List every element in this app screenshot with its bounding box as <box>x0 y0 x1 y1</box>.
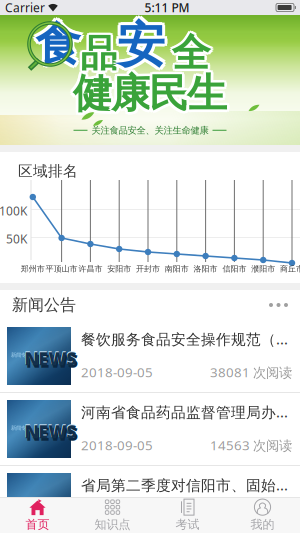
staticText: 民 <box>151 67 191 116</box>
staticText: 生 <box>185 71 225 120</box>
staticText: 全 <box>172 29 211 77</box>
staticText: 生 <box>185 67 225 116</box>
staticText: 民 <box>152 69 192 118</box>
staticText: 康 <box>111 66 151 116</box>
staticText: 安 <box>119 13 167 72</box>
staticText: 9821 次阅读 <box>218 509 292 527</box>
staticText: 生 <box>189 71 229 120</box>
staticText: 生 <box>184 69 224 118</box>
button[interactable]: 首页 <box>0 497 75 533</box>
button[interactable]: 新闻专栏 <box>0 320 300 393</box>
staticText: 康 <box>109 71 149 120</box>
staticText: NEWS <box>24 492 76 515</box>
staticText: 品 <box>80 28 117 74</box>
staticText: 健 <box>75 71 115 120</box>
staticText: 康 <box>113 71 153 120</box>
staticText: 商丘市 <box>280 264 300 274</box>
staticText: 品 <box>82 29 119 75</box>
staticText: 民 <box>149 72 189 121</box>
staticText: 健 <box>71 71 111 120</box>
staticText: 品 <box>80 31 117 77</box>
staticText: 区域排名 <box>18 162 78 180</box>
staticText: 南阳市 <box>165 264 189 274</box>
staticText: 食 <box>35 19 80 75</box>
staticText: NEWS <box>25 347 77 370</box>
staticText: 食 <box>38 14 83 70</box>
staticText: 民 <box>147 67 187 116</box>
staticText: 健 <box>75 67 115 116</box>
staticText: 开封市 <box>136 264 160 274</box>
staticText: 2018-09-05 <box>81 363 153 381</box>
staticText: 安 <box>120 16 168 75</box>
staticText: 民 <box>146 69 186 118</box>
staticText: 健 <box>71 67 111 116</box>
staticText: 民 <box>149 66 189 116</box>
staticText: 康 <box>113 67 153 116</box>
staticText: 全 <box>169 29 208 77</box>
staticText: 2018-09-05 <box>81 509 153 527</box>
staticText: 食 <box>38 18 83 74</box>
staticText: 郑州市 <box>21 264 45 274</box>
staticText: 品 <box>83 31 120 77</box>
staticText: 食 <box>35 16 80 72</box>
staticText: 健 <box>76 69 116 118</box>
button[interactable]: 我的 <box>225 497 300 533</box>
staticText: 食 <box>33 14 78 70</box>
staticText: 关注食品安全、关注生命健康 <box>91 124 208 136</box>
staticText: 品 <box>78 31 115 77</box>
button[interactable]: 新闻专栏 <box>0 466 300 533</box>
staticText: 食 <box>33 18 78 74</box>
staticText: 全 <box>174 31 213 79</box>
staticText: 新闻公告 <box>12 295 76 315</box>
staticText: 健 <box>70 69 110 118</box>
staticText: 全 <box>174 29 213 77</box>
staticText: 健 <box>73 69 113 118</box>
staticText: 康 <box>108 69 148 118</box>
button[interactable]: 新闻专栏 <box>0 393 300 466</box>
staticText: 康 <box>111 72 151 121</box>
staticText: 康 <box>109 67 149 116</box>
staticText: 50K <box>6 231 27 247</box>
staticText: Carrier <box>5 0 45 15</box>
staticText: NEWS <box>25 493 77 516</box>
staticText: 省局第二季度对信阳市、固始县餐饮监… <box>81 475 292 495</box>
staticText: 安 <box>117 13 165 72</box>
staticText: 生 <box>190 69 230 118</box>
button[interactable]: 更多 <box>265 295 292 315</box>
staticText: 食 <box>32 16 77 72</box>
staticText: 生 <box>187 69 227 118</box>
staticText: 5:11 PM <box>144 0 189 15</box>
staticText: 品 <box>78 33 115 79</box>
staticText: 全 <box>170 31 209 79</box>
staticText: 生 <box>189 67 229 116</box>
staticText: 全 <box>174 28 213 75</box>
staticText: 安 <box>117 19 165 78</box>
staticText: 全 <box>170 28 209 75</box>
staticText: 康 <box>111 69 151 118</box>
staticText: 新闻专栏 <box>11 425 31 431</box>
button[interactable]: 知识点 <box>75 497 150 533</box>
staticText: 我的 <box>250 517 274 532</box>
staticText: 知识点 <box>94 517 130 532</box>
staticText: 健 <box>73 72 113 121</box>
staticText: 品 <box>78 29 115 75</box>
staticText: 安 <box>117 16 165 75</box>
staticText: 品 <box>82 33 119 79</box>
staticText: 2018-09-05 <box>81 436 153 454</box>
staticText: NEWS <box>24 419 76 442</box>
staticText: 安 <box>115 18 163 77</box>
staticText: 民 <box>149 69 189 118</box>
staticText: 信阳市 <box>222 264 246 274</box>
staticText: 洛阳市 <box>194 264 218 274</box>
staticText: 安 <box>119 18 167 77</box>
staticText: 生 <box>187 66 227 116</box>
staticText: 14563 次阅读 <box>210 436 292 454</box>
staticText: 康 <box>114 69 154 118</box>
staticText: 安 <box>115 13 163 72</box>
button[interactable]: 考试 <box>150 497 225 533</box>
staticText: 全 <box>172 32 211 79</box>
staticText: NEWS <box>24 346 76 369</box>
staticText: 平顶山市 <box>46 264 78 274</box>
staticText: 餐饮服务食品安全操作规范（市场监管… <box>81 329 292 349</box>
